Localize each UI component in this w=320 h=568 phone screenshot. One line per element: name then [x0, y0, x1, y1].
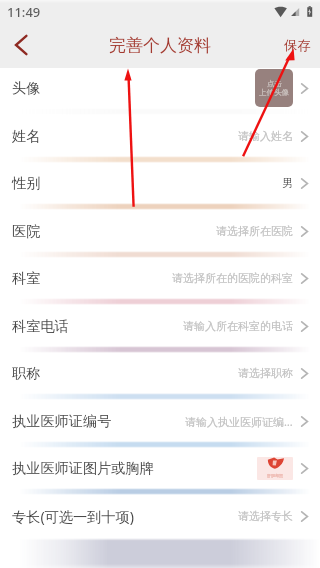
staticText: 请选择所在的医院的科室: [172, 271, 293, 285]
button[interactable]: 科室电话: [0, 305, 320, 347]
staticText: 点击: [267, 79, 282, 88]
button[interactable]: 执业医师证图片或胸牌: [0, 447, 320, 489]
staticText: 头像: [12, 79, 41, 97]
staticText: 请输入执业医师证编…: [185, 414, 293, 429]
staticText: 专长(可选一到十项): [12, 507, 135, 526]
staticText: 肝胆相照: [267, 473, 283, 478]
staticText: 男: [282, 176, 293, 190]
staticText: 科室: [12, 269, 41, 287]
button[interactable]: 专长(可选一到十项): [0, 495, 320, 537]
button[interactable]: 保存: [270, 25, 320, 65]
button[interactable]: 性别: [0, 162, 320, 204]
staticText: 上传头像: [259, 88, 289, 97]
staticText: 科室电话: [12, 317, 69, 335]
staticText: 请选择专长: [238, 509, 293, 523]
staticText: 请选择所在医院: [216, 224, 293, 238]
button[interactable]: 职称: [0, 352, 320, 394]
button[interactable]: 姓名: [0, 115, 320, 157]
staticText: 11:49: [7, 3, 41, 21]
button[interactable]: 执业医师证编号: [0, 400, 320, 442]
staticText: 请选择职称: [238, 366, 293, 380]
button[interactable]: Back: [0, 25, 42, 65]
staticText: 请输入所在科室的电话: [183, 319, 293, 333]
staticText: 执业医师证图片或胸牌: [12, 459, 154, 477]
staticText: 执业医师证编号: [12, 412, 112, 430]
button[interactable]: 头像: [0, 67, 320, 109]
staticText: 完善个人资料: [109, 35, 211, 56]
button[interactable]: 科室: [0, 257, 320, 299]
staticText: 医院: [12, 222, 41, 240]
staticText: 保存: [284, 37, 311, 54]
staticText: 职称: [12, 364, 41, 382]
staticText: 请输入姓名: [238, 129, 293, 143]
staticText: 性别: [12, 174, 41, 192]
staticText: 姓名: [12, 127, 41, 145]
button[interactable]: 医院: [0, 210, 320, 252]
